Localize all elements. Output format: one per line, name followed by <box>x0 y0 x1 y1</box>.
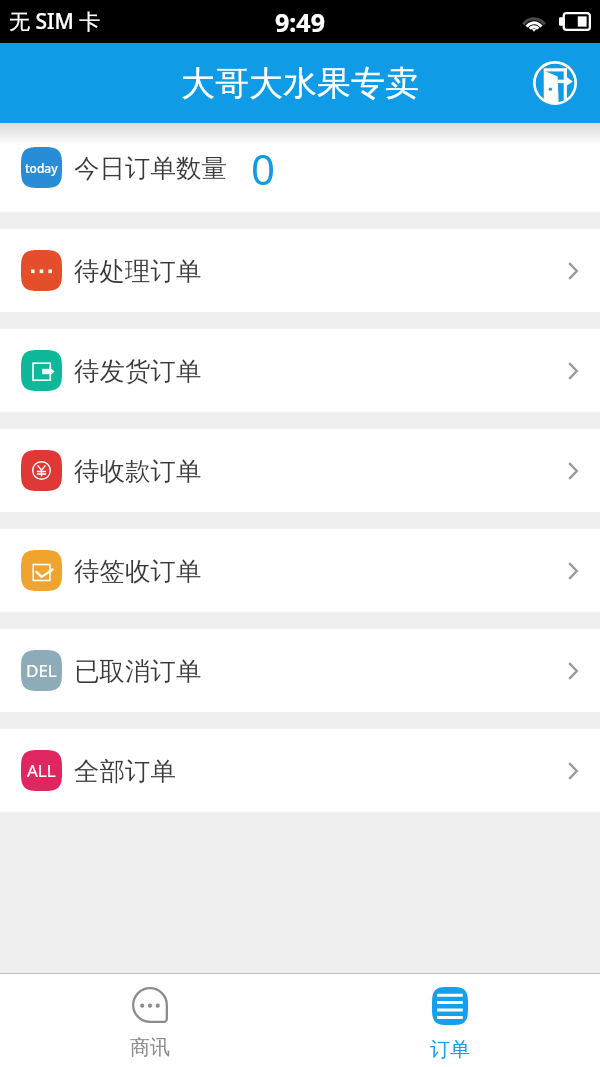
staticText: 9:49 <box>275 5 325 39</box>
staticText: 0 <box>251 140 276 197</box>
button[interactable]: Logout <box>532 60 578 106</box>
button[interactable]: ALL <box>0 729 600 812</box>
button[interactable]: 商讯 <box>0 974 300 1067</box>
staticText: 大哥大水果专卖 <box>181 62 419 105</box>
staticText: 全部订单 <box>74 755 176 787</box>
staticText: DEL <box>26 659 57 682</box>
staticText: 已取消订单 <box>74 655 202 687</box>
button[interactable]: 待发货订单 <box>0 329 600 412</box>
button[interactable]: 订单 <box>300 974 600 1067</box>
staticText: 待处理订单 <box>74 255 202 287</box>
button[interactable]: 待签收订单 <box>0 529 600 612</box>
staticText: 待收款订单 <box>74 455 202 487</box>
button[interactable]: today <box>0 123 600 212</box>
staticText: 待签收订单 <box>74 555 202 587</box>
button[interactable]: 待处理订单 <box>0 229 600 312</box>
staticText: today <box>25 160 58 176</box>
staticText: 无 SIM 卡 <box>9 7 101 36</box>
staticText: ALL <box>27 759 56 782</box>
staticText: 商讯 <box>130 1035 170 1060</box>
button[interactable]: 待收款订单 <box>0 429 600 512</box>
button[interactable]: DEL <box>0 629 600 712</box>
staticText: 今日订单数量 <box>74 152 227 184</box>
staticText: 待发货订单 <box>74 355 202 387</box>
staticText: 订单 <box>430 1037 470 1062</box>
